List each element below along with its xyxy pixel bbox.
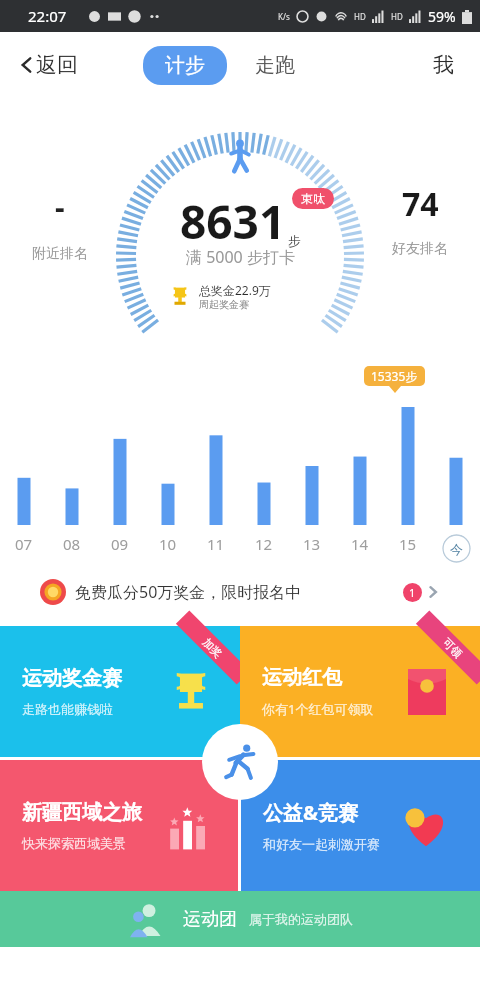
staticText: 15 bbox=[399, 534, 417, 554]
staticText: 和好友一起刺激开赛 bbox=[263, 836, 380, 852]
button[interactable]: 运动团 bbox=[0, 891, 480, 947]
staticText: 8631 bbox=[180, 190, 286, 253]
button[interactable]: 运动奖金赛 bbox=[0, 626, 240, 757]
staticText: 公益&竞赛 bbox=[263, 799, 358, 826]
button[interactable]: 运动红包 bbox=[240, 626, 480, 757]
staticText: 13 bbox=[303, 534, 321, 554]
staticText: 14 bbox=[351, 534, 369, 554]
staticText: 满 5000 步打卡 bbox=[186, 246, 295, 268]
button[interactable]: - bbox=[24, 186, 96, 263]
staticText: 我 bbox=[433, 52, 454, 78]
button[interactable]: 新疆西域之旅 bbox=[0, 760, 238, 891]
staticText: 22:07 bbox=[28, 6, 67, 26]
staticText: 束呔 bbox=[301, 191, 325, 206]
staticText: 运动红包 bbox=[262, 665, 342, 690]
staticText: 09 bbox=[111, 534, 129, 554]
staticText: 59% bbox=[428, 7, 456, 26]
staticText: 步 bbox=[288, 233, 301, 249]
staticText: 今 bbox=[450, 541, 463, 557]
staticText: 快来探索西域美景 bbox=[22, 835, 126, 851]
staticText: HD bbox=[391, 11, 403, 22]
staticText: 07 bbox=[15, 534, 33, 554]
button[interactable]: 计步 bbox=[143, 46, 227, 85]
button[interactable]: 走跑 bbox=[249, 47, 301, 84]
staticText: 总奖金22.9万 bbox=[199, 282, 271, 298]
button[interactable]: 束呔 bbox=[292, 188, 334, 209]
staticText: 15335步 bbox=[371, 368, 418, 384]
button[interactable]: 开始运动 bbox=[202, 724, 278, 800]
staticText: 计步 bbox=[165, 53, 205, 78]
button[interactable]: 74 bbox=[384, 182, 456, 258]
staticText: 附近排名 bbox=[32, 245, 88, 263]
staticText: 你有1个红包可领取 bbox=[262, 700, 374, 718]
staticText: 12 bbox=[255, 534, 273, 554]
staticText: 周起奖金赛 bbox=[199, 298, 249, 311]
staticText: - bbox=[55, 186, 65, 227]
staticText: HD bbox=[354, 11, 366, 22]
staticText: 走跑 bbox=[255, 53, 295, 78]
staticText: 新疆西域之旅 bbox=[22, 800, 142, 825]
staticText: 运动奖金赛 bbox=[22, 666, 122, 691]
staticText: 走路也能赚钱啦 bbox=[22, 701, 113, 717]
button[interactable]: 我 bbox=[427, 46, 460, 84]
staticText: 08 bbox=[63, 534, 81, 554]
button[interactable]: 公益&竞赛 bbox=[241, 760, 480, 891]
staticText: 11 bbox=[207, 534, 225, 554]
staticText: 免费瓜分50万奖金，限时报名中 bbox=[75, 581, 302, 603]
staticText: 返回 bbox=[36, 52, 78, 78]
staticText: 10 bbox=[159, 534, 177, 554]
staticText: 可领 bbox=[440, 635, 465, 661]
staticText: 好友排名 bbox=[392, 240, 448, 258]
staticText: 1 bbox=[409, 585, 416, 600]
staticText: 属于我的运动团队 bbox=[249, 911, 353, 927]
staticText: 74 bbox=[402, 182, 439, 226]
button[interactable]: 总奖金22.9万 bbox=[155, 278, 325, 314]
button[interactable]: 今 bbox=[442, 534, 471, 563]
button[interactable]: 免费瓜分50万奖金，限时报名中 bbox=[28, 570, 453, 614]
staticText: 运动团 bbox=[183, 908, 237, 931]
staticText: K/s bbox=[278, 11, 290, 22]
button[interactable]: 返回 bbox=[12, 46, 84, 84]
staticText: 加奖 bbox=[200, 635, 225, 661]
